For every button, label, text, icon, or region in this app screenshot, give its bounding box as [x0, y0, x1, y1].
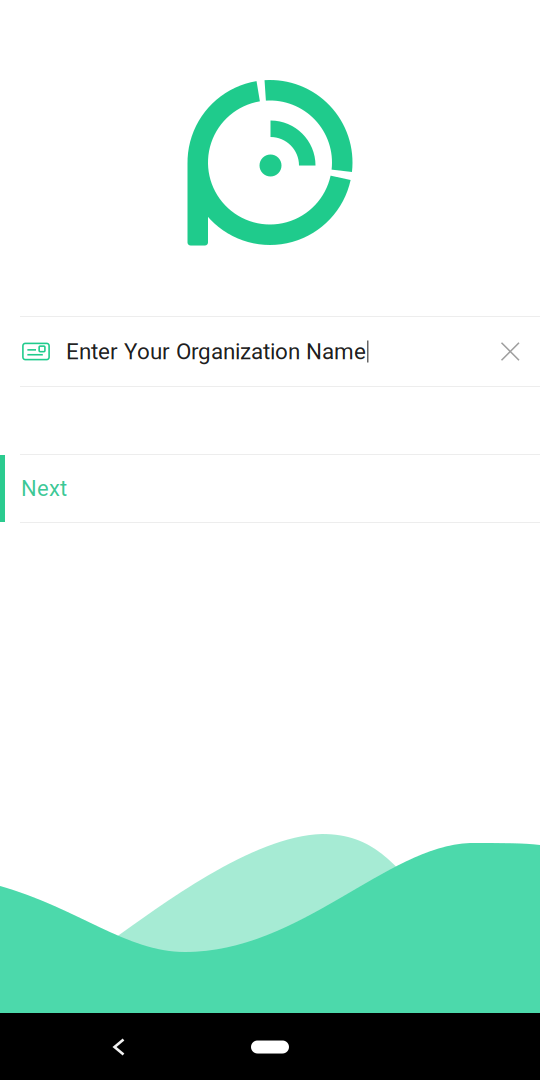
- button[interactable]: Back: [91, 1019, 147, 1075]
- staticText: Enter Your Organization Name: [66, 338, 366, 365]
- button[interactable]: Home: [230, 1027, 310, 1067]
- button[interactable]: Next: [0, 455, 540, 522]
- staticText: Next: [21, 476, 67, 501]
- button[interactable]: Enter Your Organization Name: [0, 317, 540, 386]
